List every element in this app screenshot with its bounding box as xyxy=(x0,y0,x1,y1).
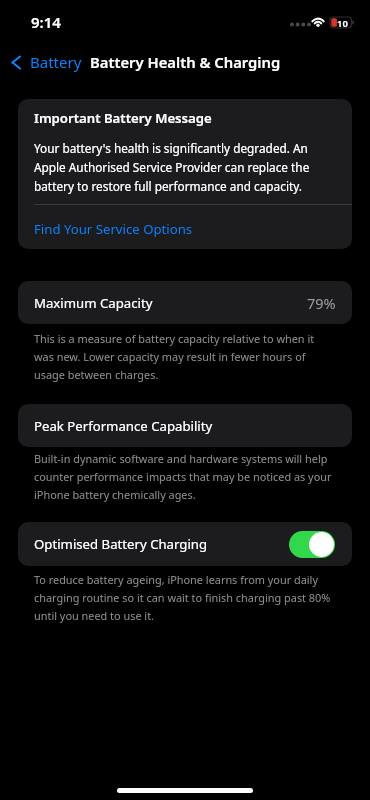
staticText: Important Battery Message xyxy=(34,109,212,127)
staticText: 10 xyxy=(337,17,348,28)
button[interactable]: Find Your Service Options xyxy=(18,205,352,249)
staticText: Optimised Battery Charging xyxy=(34,535,208,553)
staticText: To reduce battery ageing, iPhone learns … xyxy=(34,572,334,624)
staticText: 9:14 xyxy=(31,12,61,32)
staticText: Battery Health & Charging xyxy=(90,52,281,72)
staticText: Built-in dynamic software and hardware s… xyxy=(34,451,334,503)
staticText: Maximum Capacity xyxy=(34,294,153,312)
button[interactable]: Optimised Battery Charging toggle xyxy=(289,531,335,558)
button[interactable]: Optimised Battery Charging xyxy=(18,522,352,566)
staticText: This is a measure of battery capacity re… xyxy=(34,331,334,383)
staticText: Find Your Service Options xyxy=(34,220,193,238)
staticText: Peak Performance Capability xyxy=(34,417,213,435)
staticText: 79% xyxy=(307,293,336,313)
staticText: Your battery's health is significantly d… xyxy=(34,140,336,195)
button[interactable]: Battery xyxy=(6,49,88,75)
button[interactable]: Peak Performance Capability xyxy=(18,404,352,447)
staticText: Battery xyxy=(30,52,82,72)
button[interactable]: Maximum Capacity xyxy=(18,281,352,324)
